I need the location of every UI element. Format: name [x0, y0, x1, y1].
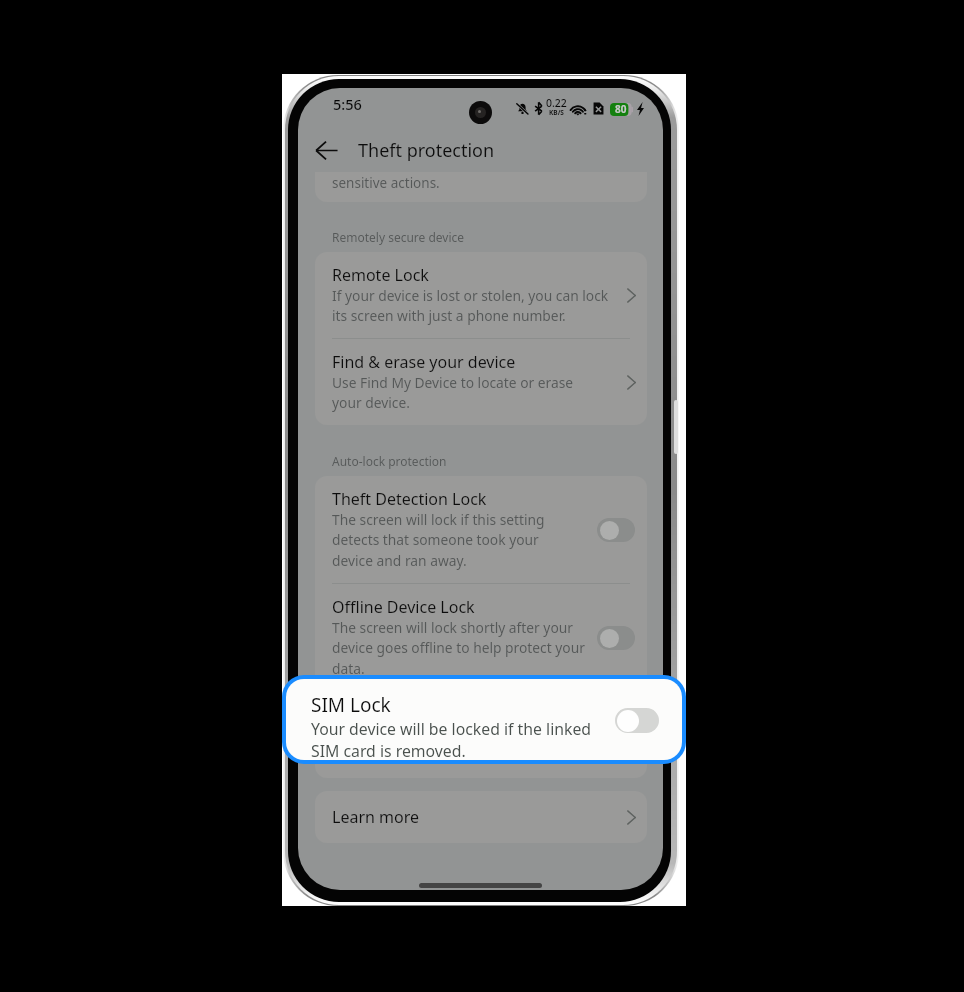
staticText: Find & erase your device: [332, 351, 516, 373]
button[interactable]: Back: [305, 129, 347, 171]
staticText: Remote Lock: [332, 264, 429, 286]
staticText: SIM Lock: [332, 704, 400, 726]
button[interactable]: Offline Device Lock: [315, 584, 647, 691]
button[interactable]: Theft Detection Lock toggle: [597, 518, 635, 542]
staticText: The screen will lock if this setting det…: [332, 510, 545, 571]
button[interactable]: SIM Lock toggle: [615, 708, 659, 733]
button[interactable]: sensitive actions.: [315, 172, 647, 202]
button[interactable]: Learn more: [315, 791, 647, 843]
staticText: Your device will be locked if the linked…: [311, 718, 592, 760]
staticText: Learn more: [332, 806, 419, 828]
staticText: 5:56: [333, 94, 362, 114]
staticText: Remotely secure device: [332, 229, 465, 245]
staticText: Use Find My Device to locate or erase yo…: [332, 373, 574, 413]
staticText: 80: [615, 102, 627, 116]
button[interactable]: SIM Lock: [315, 692, 647, 778]
button[interactable]: Theft Detection Lock: [315, 476, 647, 583]
staticText: SIM Lock: [311, 692, 391, 718]
staticText: Your device will be locked if the linked…: [332, 726, 577, 766]
button[interactable]: Find & erase your device: [315, 339, 647, 425]
staticText: Theft protection: [358, 138, 495, 163]
staticText: The screen will lock shortly after your …: [332, 618, 585, 679]
staticText: Offline Device Lock: [332, 596, 475, 618]
staticText: sensitive actions.: [332, 174, 440, 192]
button[interactable]: Remote Lock: [315, 252, 647, 338]
staticText: 0.22: [546, 96, 567, 110]
staticText: Theft Detection Lock: [332, 488, 487, 510]
staticText: KB/S: [549, 108, 564, 117]
staticText: If your device is lost or stolen, you ca…: [332, 286, 609, 326]
button[interactable]: SIM Lock: [286, 679, 682, 760]
staticText: Auto-lock protection: [332, 453, 447, 469]
button[interactable]: Offline Device Lock toggle: [597, 626, 635, 650]
button[interactable]: SIM Lock toggle: [597, 723, 635, 747]
